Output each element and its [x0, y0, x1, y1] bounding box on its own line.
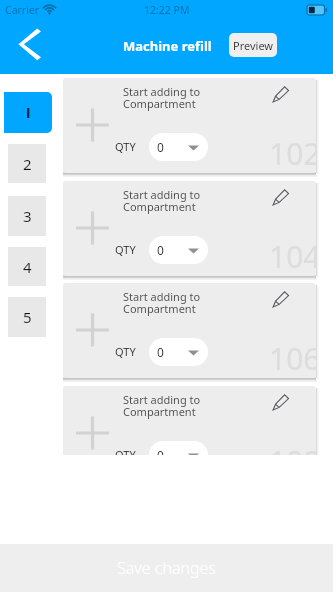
button[interactable]: Edit compartment: [266, 284, 296, 314]
button[interactable]: Back: [4, 24, 44, 64]
staticText: 4: [23, 257, 32, 277]
staticText: Start adding to Compartment: [123, 187, 201, 214]
staticText: 0: [157, 139, 164, 155]
staticText: 102: [269, 133, 316, 173]
button[interactable]: 4: [8, 247, 46, 286]
staticText: QTY: [115, 344, 136, 359]
button[interactable]: 108: [63, 386, 316, 455]
staticText: 2: [23, 154, 32, 174]
staticText: Start adding to Compartment: [123, 289, 201, 316]
button[interactable]: 0: [149, 338, 208, 366]
staticText: 108: [269, 441, 316, 455]
button[interactable]: Preview: [229, 33, 277, 57]
button[interactable]: 5: [8, 297, 46, 337]
button[interactable]: 2: [8, 144, 46, 183]
staticText: Carrier: [5, 3, 40, 17]
button[interactable]: Edit compartment: [266, 79, 296, 109]
staticText: Start adding to Compartment: [123, 84, 201, 111]
staticText: Save changes: [117, 557, 216, 579]
staticText: 104: [269, 236, 316, 276]
button[interactable]: 0: [149, 441, 208, 455]
button[interactable]: Edit compartment: [266, 387, 296, 417]
staticText: 5: [23, 307, 32, 327]
button[interactable]: 102: [63, 78, 316, 173]
staticText: QTY: [115, 242, 136, 257]
button[interactable]: 104: [63, 181, 316, 276]
button[interactable]: 0: [149, 133, 208, 161]
button[interactable]: Compartment 1: [4, 92, 52, 133]
staticText: Start adding to Compartment: [123, 392, 201, 419]
staticText: QTY: [115, 139, 136, 154]
button[interactable]: 3: [8, 196, 46, 236]
button[interactable]: 106: [63, 283, 316, 378]
staticText: Preview: [233, 38, 274, 53]
staticText: 0: [157, 447, 164, 455]
staticText: 12:22 PM: [144, 3, 190, 17]
staticText: 3: [23, 206, 32, 226]
staticText: 0: [157, 344, 164, 360]
staticText: 0: [157, 242, 164, 258]
button[interactable]: 0: [149, 236, 208, 264]
button[interactable]: Edit compartment: [266, 182, 296, 212]
staticText: QTY: [115, 447, 136, 455]
staticText: Machine refill: [123, 37, 212, 55]
staticText: 106: [269, 338, 316, 378]
